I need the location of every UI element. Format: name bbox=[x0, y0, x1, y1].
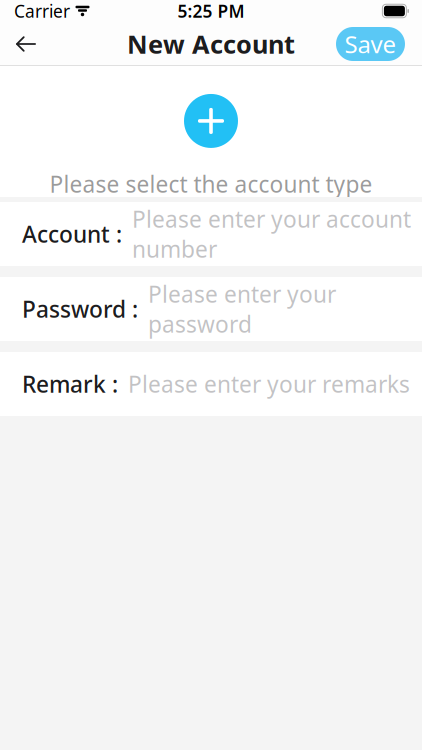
staticText: 5:25 PM bbox=[177, 0, 244, 22]
button[interactable]: Back bbox=[0, 22, 52, 66]
staticText: Carrier bbox=[14, 0, 70, 22]
button[interactable]: Select account type bbox=[179, 89, 243, 153]
staticText: Remark : bbox=[22, 369, 118, 399]
button[interactable]: Remark : bbox=[0, 352, 422, 416]
button[interactable]: Account : bbox=[0, 202, 422, 266]
staticText: Please select the account type bbox=[49, 169, 372, 199]
staticText: Password : bbox=[22, 294, 138, 324]
button[interactable]: Password : bbox=[0, 277, 422, 341]
staticText: Save bbox=[344, 28, 396, 60]
staticText: New Account bbox=[127, 27, 295, 61]
staticText: Please enter your account number bbox=[132, 204, 411, 264]
staticText: Account : bbox=[22, 219, 122, 249]
staticText: Please enter your remarks bbox=[128, 369, 410, 399]
button[interactable]: Save bbox=[336, 27, 405, 61]
staticText: Please enter your password bbox=[148, 279, 336, 339]
